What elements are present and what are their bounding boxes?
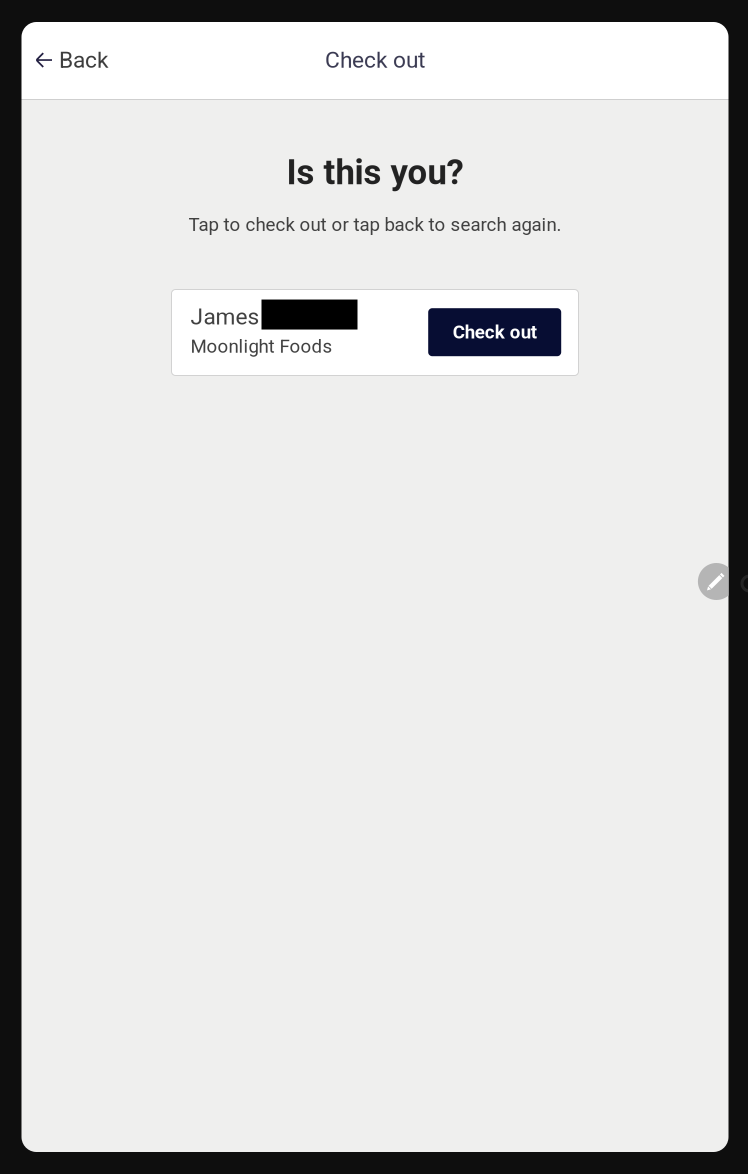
staticText: Check out bbox=[325, 47, 425, 73]
button[interactable]: Check out bbox=[428, 308, 561, 356]
staticText: James bbox=[190, 303, 259, 330]
staticText: Back bbox=[59, 47, 108, 73]
staticText: Tap to check out or tap back to search a… bbox=[188, 214, 561, 235]
button[interactable]: Edit bbox=[698, 563, 735, 600]
staticText: Check out bbox=[453, 321, 537, 343]
button[interactable]: Back bbox=[21, 33, 124, 87]
staticText: Moonlight Foods bbox=[190, 335, 332, 357]
button[interactable]: James bbox=[171, 289, 409, 375]
staticText: Is this you? bbox=[286, 152, 463, 193]
